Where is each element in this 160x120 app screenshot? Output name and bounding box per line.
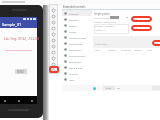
staticText: 37.4 <box>133 18 138 21</box>
staticText: Decimal / sexagesimal <box>94 21 116 24</box>
staticText: Sample_01 <box>2 22 22 27</box>
button[interactable]: emulator control 6 <box>49 43 58 49</box>
staticText: Directional pad <box>69 36 87 39</box>
button[interactable]: Location <box>62 10 92 16</box>
staticText: Note <box>147 49 152 52</box>
button[interactable]: emulator control 1 <box>49 13 58 19</box>
staticText: Fingerprint <box>69 48 82 51</box>
button[interactable]: Latitude <box>108 49 121 52</box>
button[interactable]: Address <box>134 49 147 52</box>
staticText: Altitude 0.0 <box>95 29 106 32</box>
button[interactable]: Fingerprint <box>62 46 92 52</box>
button[interactable]: emulator control 5 <box>49 37 58 43</box>
button[interactable]: Directional pad <box>62 34 92 40</box>
button[interactable]: Phone <box>62 28 92 34</box>
button[interactable]: Google Play <box>62 64 92 70</box>
staticText: Lat / lng: 37.42, -122.08 <box>4 37 39 41</box>
button[interactable]: emulator control 9 <box>49 61 58 67</box>
staticText: Virtual sensors <box>69 54 86 57</box>
other: highlighted field <box>152 40 160 46</box>
button[interactable]: Settings <box>62 70 92 76</box>
staticText: 37.4 <box>133 27 138 30</box>
button[interactable]: SAVE <box>103 86 115 90</box>
staticText: Longitude <box>121 49 132 52</box>
staticText: 37.4220 -122.0840 <box>95 25 114 28</box>
staticText: Settings <box>69 72 79 75</box>
button[interactable]: emulator control 8 <box>49 55 58 61</box>
staticText: Latitude <box>108 49 117 52</box>
other: highlighted field <box>131 25 152 31</box>
staticText: SAVE <box>106 87 112 90</box>
button[interactable]: emulator control 2 <box>49 19 58 25</box>
staticText: Displays <box>69 18 79 21</box>
staticText: Address <box>134 49 142 52</box>
button[interactable]: Displays <box>62 16 92 22</box>
staticText: Name <box>94 49 100 52</box>
staticText: Help <box>69 78 75 81</box>
button[interactable]: Microphone <box>62 40 92 46</box>
button[interactable]: emulator control 3 <box>49 25 58 31</box>
button[interactable]: Note <box>147 49 160 52</box>
button[interactable]: Virtual sensors <box>62 52 92 58</box>
button[interactable]: Name <box>94 49 108 52</box>
other: extended controls highlight <box>49 66 59 73</box>
staticText: Location <box>69 12 79 15</box>
button[interactable]: emulator control 10 <box>49 67 58 73</box>
staticText: Single points <box>94 12 110 16</box>
staticText: Bug report <box>69 60 82 63</box>
staticText: Saved points <box>95 43 108 46</box>
staticText: 37.4 <box>154 42 159 45</box>
button[interactable]: emulator control 7 <box>49 49 58 55</box>
button[interactable]: Bug report <box>62 58 92 64</box>
button[interactable]: emulator control 0 <box>49 7 58 13</box>
staticText: Phone <box>69 30 77 33</box>
other: highlighted field <box>131 16 152 22</box>
staticText: Google Play <box>69 66 83 69</box>
button[interactable]: emulator control 4 <box>49 31 58 37</box>
staticText: Extended controls <box>63 5 86 9</box>
button[interactable]: SEND <box>15 69 27 74</box>
staticText: Battery <box>69 24 78 27</box>
button[interactable]: Battery <box>62 22 92 28</box>
button[interactable]: Help <box>62 76 92 82</box>
staticText: Location mode <box>94 17 110 20</box>
staticText: SEND <box>17 70 25 74</box>
staticText: Microphone <box>69 42 83 45</box>
button[interactable]: Longitude <box>121 49 134 52</box>
